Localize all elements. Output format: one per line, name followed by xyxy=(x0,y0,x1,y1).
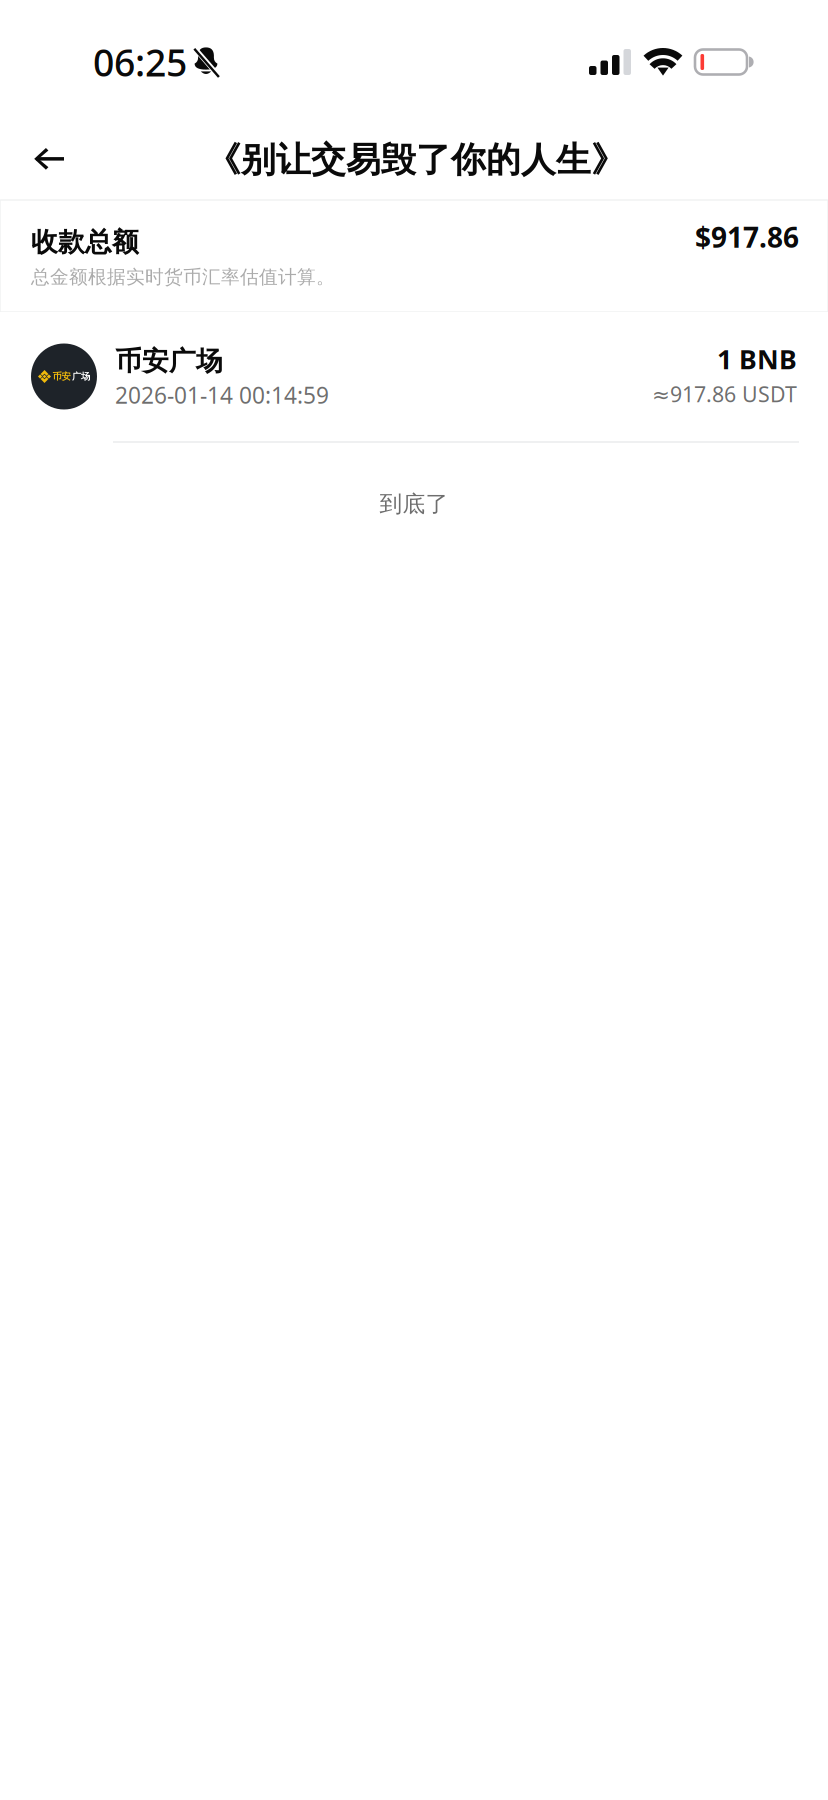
button[interactable]: Back xyxy=(0,124,96,200)
staticText: 币安 xyxy=(52,371,70,382)
staticText: $917.86 xyxy=(695,218,799,256)
button[interactable]: 币安 xyxy=(0,312,828,443)
staticText: ≈917.86 USDT xyxy=(652,380,797,408)
staticText: 总金额根据实时货币汇率估值计算。 xyxy=(31,265,335,288)
staticText: 《别让交易毁了你的人生》 xyxy=(206,139,626,181)
staticText: 币安广场 xyxy=(115,345,223,377)
staticText: 收款总额 xyxy=(31,226,139,258)
staticText: 1 BNB xyxy=(717,341,797,377)
staticText: 06:25 xyxy=(93,37,187,87)
staticText: 2026-01-14 00:14:59 xyxy=(115,380,329,410)
staticText: 广场 xyxy=(72,371,90,382)
staticText: 到底了 xyxy=(379,490,448,518)
